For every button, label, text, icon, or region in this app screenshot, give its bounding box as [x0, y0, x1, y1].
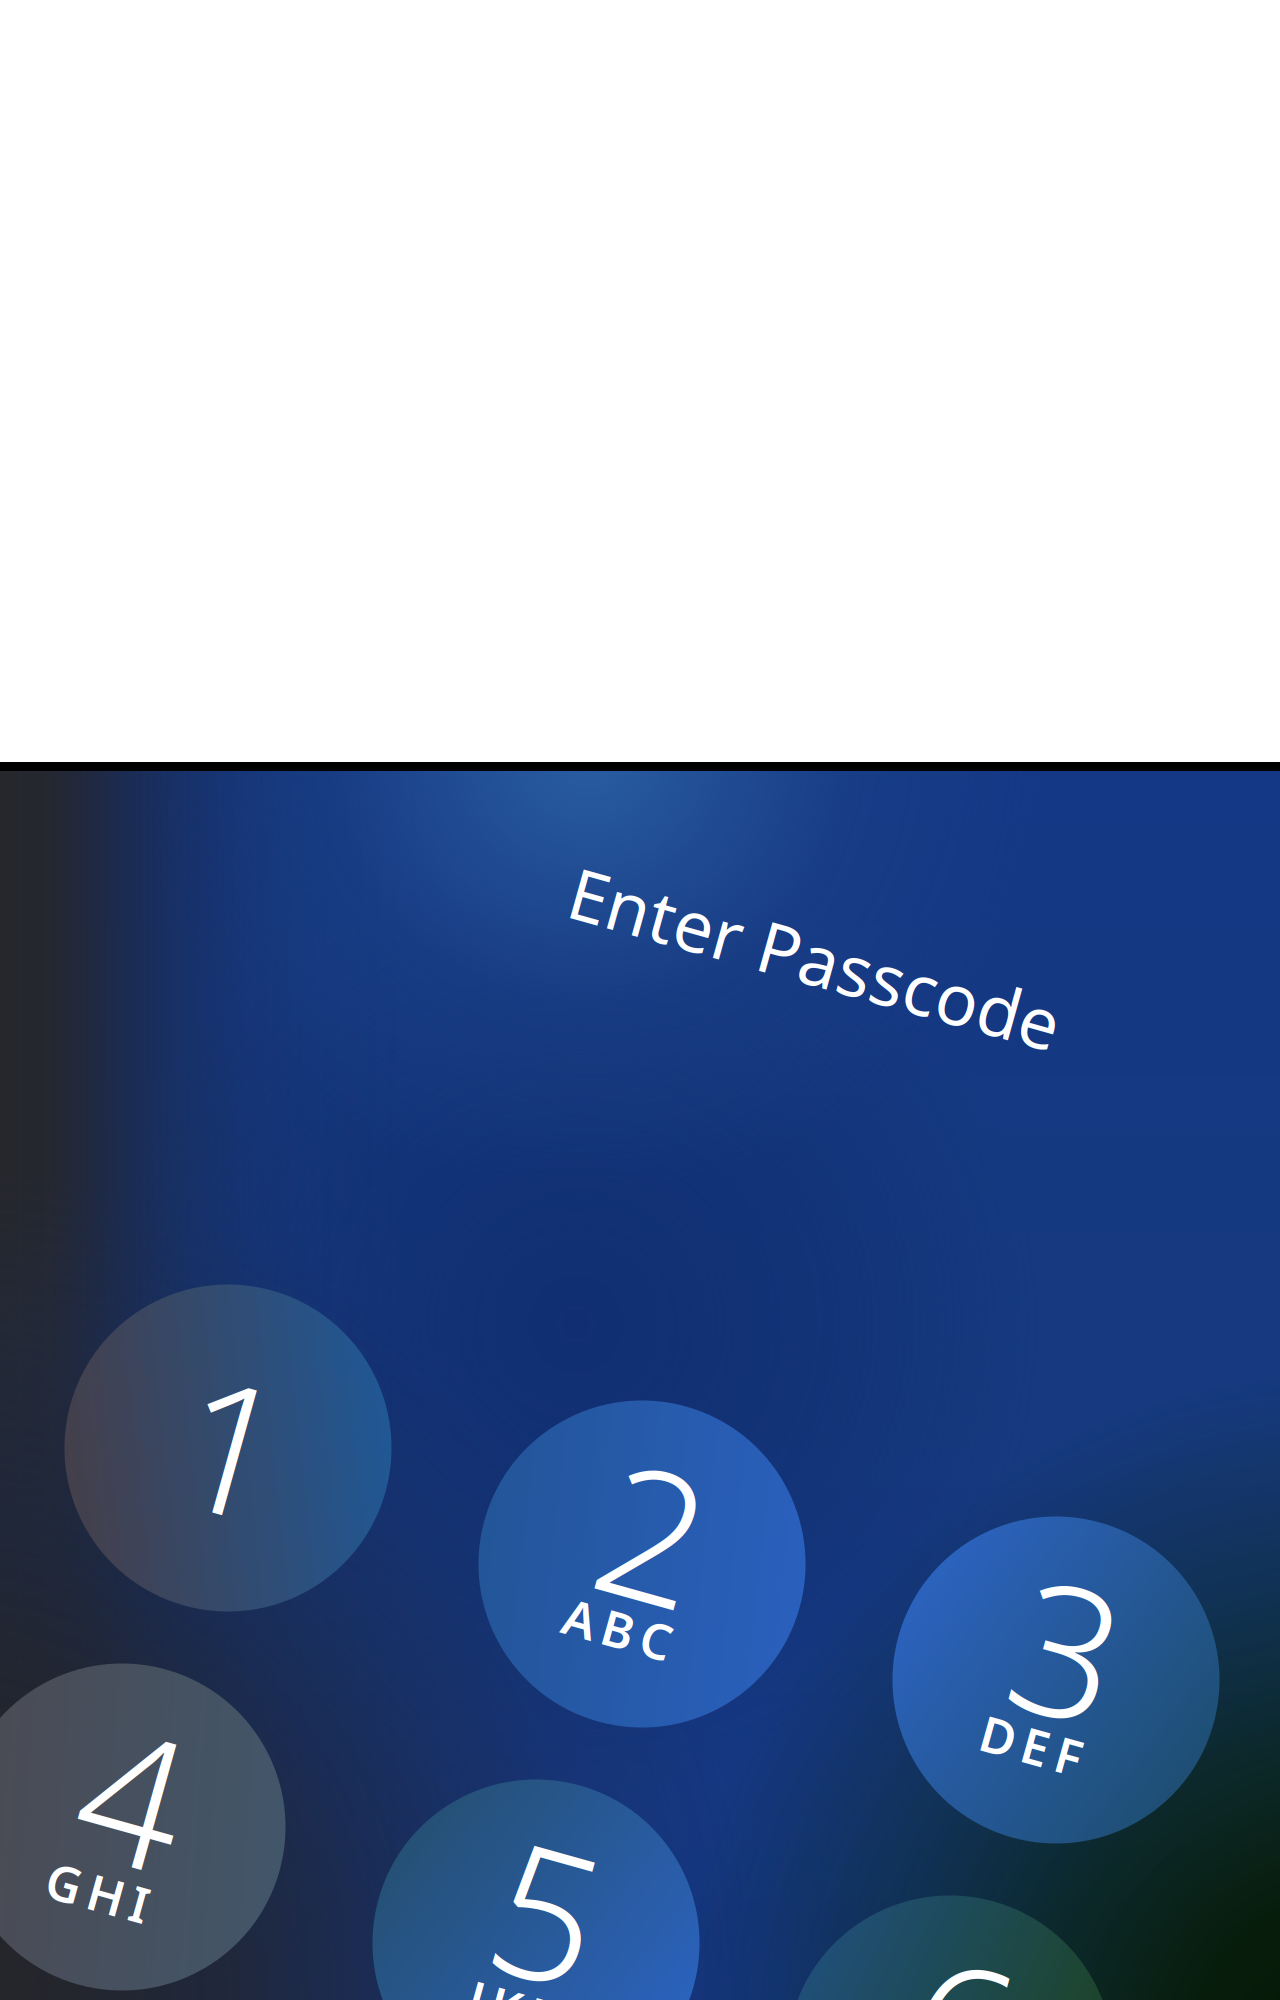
- staticText: 2: [593, 1410, 697, 1650]
- button[interactable]: 4: [0, 1663, 285, 1990]
- staticText: 4: [73, 1673, 177, 1913]
- staticText: GHI: [63, 1863, 168, 1929]
- staticText: ABC: [580, 1600, 691, 1666]
- button[interactable]: 3: [892, 1516, 1219, 1843]
- button[interactable]: 5: [372, 1779, 699, 2000]
- staticText: 3: [1007, 1526, 1111, 1766]
- staticText: 6: [901, 1905, 1005, 2000]
- button[interactable]: 6: [786, 1895, 1113, 2000]
- staticText: DEF: [997, 1716, 1102, 1782]
- button[interactable]: 1: [64, 1284, 391, 1611]
- staticText: Enter Passcode: [561, 911, 1068, 1005]
- button[interactable]: 2: [478, 1400, 805, 1727]
- staticText: 1: [179, 1324, 283, 1564]
- staticText: 5: [487, 1789, 591, 2000]
- staticText: JKL: [486, 1979, 574, 2000]
